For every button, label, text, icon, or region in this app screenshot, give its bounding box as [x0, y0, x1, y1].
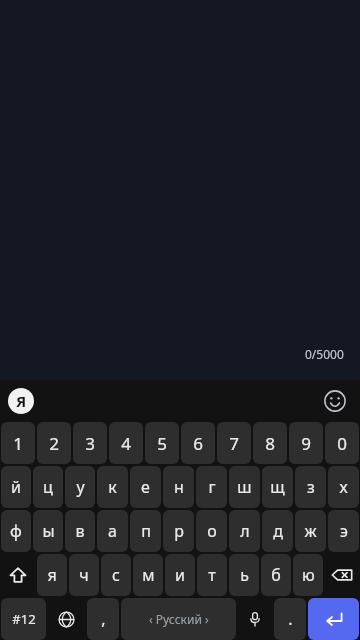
staticText: 9 [301, 432, 311, 455]
button[interactable]: е [130, 466, 161, 508]
button[interactable]: ф [1, 510, 31, 552]
staticText: ь [240, 564, 249, 586]
button[interactable]: 2 [37, 422, 71, 464]
staticText: 5 [157, 432, 167, 455]
button[interactable]: 9 [289, 422, 323, 464]
staticText: #12 [12, 610, 36, 628]
button[interactable]: 7 [217, 422, 251, 464]
staticText: з [307, 476, 315, 498]
button[interactable]: а [97, 510, 128, 552]
button[interactable]: Voice input [238, 598, 272, 640]
button[interactable]: п [130, 510, 161, 552]
staticText: у [76, 476, 85, 498]
staticText: 0/5000 [305, 346, 344, 362]
staticText: и [175, 564, 185, 586]
staticText: к [108, 476, 117, 498]
button[interactable]: 4 [109, 422, 143, 464]
staticText: 7 [229, 432, 239, 455]
staticText: 3 [85, 432, 95, 455]
staticText: я [47, 564, 57, 586]
staticText: д [273, 520, 283, 542]
button[interactable]: 0 [325, 422, 359, 464]
button[interactable]: м [133, 554, 163, 596]
button[interactable]: б [261, 554, 291, 596]
staticText: ‹ Русский › [149, 611, 209, 627]
button[interactable]: ь [229, 554, 259, 596]
staticText: б [271, 564, 281, 586]
staticText: с [112, 564, 120, 586]
button[interactable]: д [262, 510, 293, 552]
staticText: . [288, 608, 293, 630]
button[interactable]: э [328, 510, 359, 552]
staticText: о [207, 520, 217, 542]
staticText: н [174, 476, 184, 498]
button[interactable]: 5 [145, 422, 179, 464]
button[interactable]: ю [293, 554, 323, 596]
staticText: в [75, 520, 85, 542]
button[interactable]: 3 [73, 422, 107, 464]
staticText: й [11, 476, 21, 498]
button[interactable]: Space [121, 598, 236, 640]
button[interactable]: ж [295, 510, 326, 552]
button[interactable]: Emoji [320, 386, 350, 416]
staticText: п [141, 520, 151, 542]
staticText: е [141, 476, 150, 498]
button[interactable]: Shift [1, 554, 35, 596]
staticText: г [208, 476, 216, 498]
button[interactable]: 8 [253, 422, 287, 464]
staticText: ш [237, 476, 252, 498]
staticText: а [108, 520, 117, 542]
button[interactable]: н [163, 466, 194, 508]
staticText: 8 [265, 432, 275, 455]
button[interactable]: 6 [181, 422, 215, 464]
staticText: 0 [337, 432, 347, 455]
button[interactable]: Change language [48, 598, 85, 640]
button[interactable]: о [196, 510, 227, 552]
staticText: э [340, 520, 348, 542]
button[interactable]: й [1, 466, 31, 508]
button[interactable]: я [37, 554, 67, 596]
button[interactable]: л [229, 510, 260, 552]
button[interactable]: х [328, 466, 359, 508]
button[interactable]: Backspace [325, 554, 359, 596]
staticText: ы [42, 520, 55, 542]
staticText: , [101, 608, 106, 630]
staticText: щ [270, 476, 285, 498]
staticText: 4 [121, 432, 131, 455]
button[interactable]: т [197, 554, 227, 596]
button[interactable]: ц [33, 466, 63, 508]
button[interactable]: у [65, 466, 95, 508]
button[interactable]: к [97, 466, 128, 508]
button[interactable]: , [87, 598, 119, 640]
button[interactable]: р [163, 510, 194, 552]
button[interactable]: и [165, 554, 195, 596]
staticText: 1 [13, 432, 23, 455]
staticText: л [240, 520, 250, 542]
button[interactable]: . [274, 598, 306, 640]
button[interactable]: з [295, 466, 326, 508]
staticText: ф [10, 520, 22, 542]
button[interactable]: в [65, 510, 95, 552]
button[interactable]: Yandex assistant [8, 388, 34, 414]
button[interactable]: щ [262, 466, 293, 508]
staticText: т [208, 564, 216, 586]
staticText: х [339, 476, 348, 498]
button[interactable]: с [101, 554, 131, 596]
button[interactable]: г [196, 466, 227, 508]
staticText: ю [302, 564, 315, 586]
button[interactable]: #12 [1, 598, 46, 640]
staticText: 6 [193, 432, 203, 455]
button[interactable]: Enter [308, 598, 359, 640]
staticText: Я [16, 391, 27, 411]
staticText: 2 [49, 432, 59, 455]
staticText: р [174, 520, 184, 542]
button[interactable]: 1 [1, 422, 35, 464]
staticText: ц [43, 476, 53, 498]
button[interactable]: ч [69, 554, 99, 596]
staticText: ж [304, 520, 317, 542]
staticText: м [142, 564, 155, 586]
staticText: ч [79, 564, 89, 586]
button[interactable]: ы [33, 510, 63, 552]
button[interactable]: ш [229, 466, 260, 508]
